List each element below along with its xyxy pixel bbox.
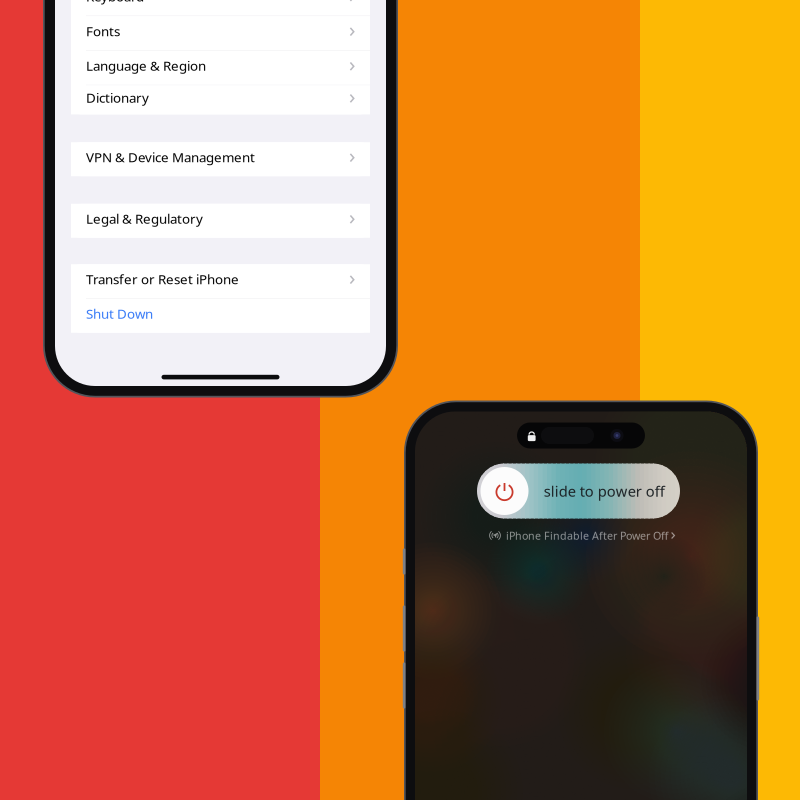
button[interactable]: Keyboard — [71, 0, 370, 16]
button[interactable]: iPhone Findable After Power Off — [487, 527, 675, 543]
staticText: Legal & Regulatory — [86, 210, 203, 227]
staticText: VPN & Device Management — [86, 148, 255, 166]
staticText: Language & Region — [86, 57, 206, 74]
button[interactable]: Transfer or Reset iPhone — [71, 264, 370, 298]
button[interactable]: VPN & Device Management — [71, 142, 370, 176]
staticText: Fonts — [86, 22, 120, 40]
button[interactable]: Fonts — [71, 16, 370, 50]
button[interactable]: Legal & Regulatory — [71, 204, 370, 238]
staticText: Shut Down — [86, 305, 153, 322]
staticText: Transfer or Reset iPhone — [86, 270, 239, 288]
staticText: Keyboard — [86, 0, 144, 5]
button[interactable]: Shut Down — [71, 299, 370, 333]
staticText: slide to power off — [544, 481, 665, 501]
staticText: iPhone Findable After Power Off — [506, 528, 668, 543]
button[interactable]: Language & Region — [71, 51, 370, 85]
staticText: Dictionary — [86, 89, 149, 106]
button[interactable]: Dictionary — [71, 85, 370, 114]
